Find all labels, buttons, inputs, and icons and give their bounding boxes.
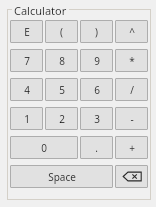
- button[interactable]: (: [45, 20, 78, 43]
- staticText: 5: [59, 83, 65, 97]
- staticText: ): [95, 25, 98, 39]
- staticText: 0: [41, 141, 47, 155]
- button[interactable]: Space: [10, 165, 113, 188]
- button[interactable]: 9: [80, 49, 113, 72]
- staticText: .: [95, 141, 98, 155]
- staticText: -: [130, 112, 134, 126]
- staticText: 1: [24, 112, 30, 126]
- button[interactable]: 0: [10, 136, 78, 159]
- button[interactable]: 3: [80, 107, 113, 130]
- staticText: 3: [94, 112, 100, 126]
- staticText: 8: [59, 54, 65, 68]
- button[interactable]: ): [80, 20, 113, 43]
- staticText: 7: [24, 54, 30, 68]
- staticText: 2: [59, 112, 65, 126]
- button[interactable]: 5: [45, 78, 78, 101]
- button[interactable]: 6: [80, 78, 113, 101]
- button[interactable]: ^: [115, 20, 148, 43]
- button[interactable]: 7: [10, 49, 43, 72]
- button[interactable]: +: [115, 136, 148, 159]
- button[interactable]: 4: [10, 78, 43, 101]
- staticText: E: [24, 25, 30, 39]
- staticText: *: [129, 54, 135, 68]
- staticText: (: [60, 25, 63, 39]
- staticText: Space: [48, 170, 76, 184]
- button[interactable]: E: [10, 20, 43, 43]
- button[interactable]: .: [80, 136, 113, 159]
- button[interactable]: Backspace: [115, 165, 148, 188]
- button[interactable]: 8: [45, 49, 78, 72]
- staticText: ^: [129, 25, 135, 39]
- staticText: 4: [24, 83, 30, 97]
- staticText: 9: [94, 54, 100, 68]
- staticText: /: [130, 83, 134, 97]
- button[interactable]: 1: [10, 107, 43, 130]
- staticText: Calculator: [14, 3, 67, 18]
- button[interactable]: 2: [45, 107, 78, 130]
- button[interactable]: /: [115, 78, 148, 101]
- button[interactable]: *: [115, 49, 148, 72]
- staticText: +: [129, 141, 135, 155]
- button[interactable]: -: [115, 107, 148, 130]
- staticText: 6: [94, 83, 100, 97]
